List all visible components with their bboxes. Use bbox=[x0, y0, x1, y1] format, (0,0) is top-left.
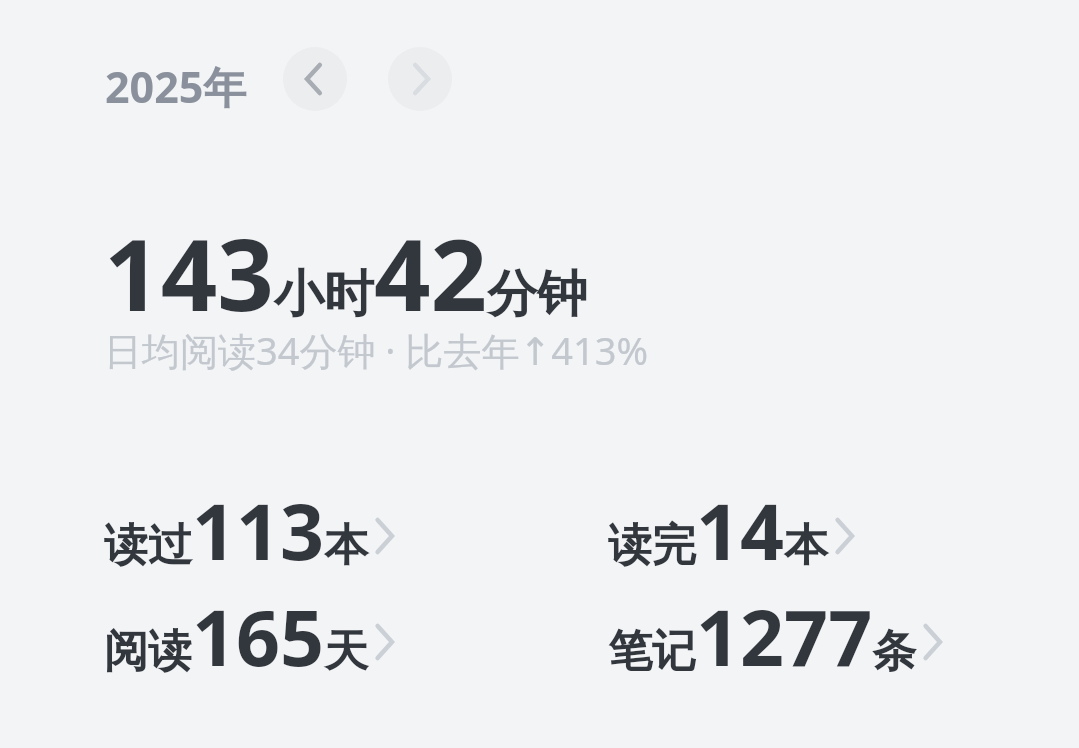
staticText: 日均阅读34分钟 · 比去年↑413% bbox=[104, 324, 649, 376]
staticText: 2025年 bbox=[105, 57, 247, 116]
button[interactable]: 阅读165天 bbox=[104, 584, 403, 689]
button[interactable]: 读过113本 bbox=[104, 478, 403, 583]
staticText: 阅读165天 bbox=[104, 584, 369, 689]
staticText: 143小时42分钟 bbox=[104, 205, 588, 340]
button[interactable]: 笔记1277条 bbox=[608, 584, 951, 689]
staticText: 笔记1277条 bbox=[608, 584, 917, 689]
button[interactable]: Previous year bbox=[283, 47, 347, 111]
staticText: 读完14本 bbox=[608, 478, 829, 583]
button[interactable]: Next year bbox=[388, 47, 452, 111]
staticText: 读过113本 bbox=[104, 478, 369, 583]
button[interactable]: 读完14本 bbox=[608, 478, 863, 583]
